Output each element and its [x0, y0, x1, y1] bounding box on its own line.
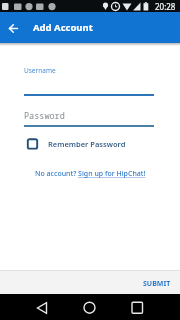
- button[interactable]: Remember Password: [27, 138, 126, 149]
- button[interactable]: [122, 294, 152, 320]
- button[interactable]: Password: [24, 110, 65, 122]
- button[interactable]: SUBMIT: [140, 276, 174, 292]
- staticText: Remember Password: [48, 139, 126, 149]
- button[interactable]: [0, 15, 26, 41]
- button[interactable]: No account? Sign up for HipChat!: [35, 169, 146, 179]
- button[interactable]: [75, 294, 105, 320]
- staticText: SUBMIT: [143, 279, 171, 289]
- staticText: Add Account: [33, 21, 93, 34]
- button[interactable]: Username: [24, 66, 56, 75]
- button[interactable]: [27, 294, 57, 320]
- staticText: 20:28: [155, 1, 176, 12]
